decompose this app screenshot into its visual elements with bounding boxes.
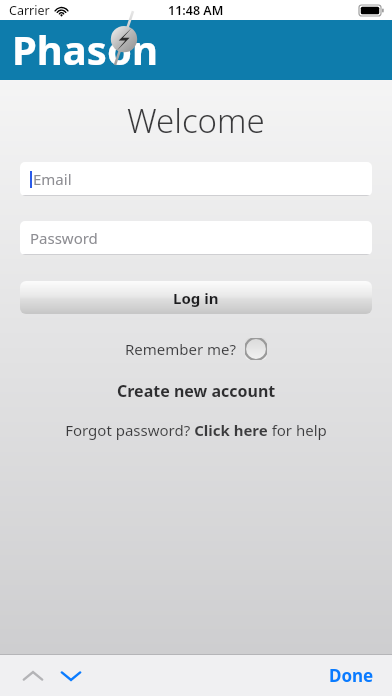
button[interactable]: Remember me? — [125, 338, 267, 360]
staticText: Carrier — [9, 2, 50, 19]
button[interactable]: Previous field — [16, 659, 50, 693]
button[interactable]: Done — [325, 660, 378, 691]
staticText: Phason — [12, 22, 158, 76]
button[interactable]: Email — [20, 162, 372, 196]
staticText: Password — [30, 228, 98, 248]
staticText: Forgot password? Click here for help — [65, 420, 327, 440]
staticText: 11:48 AM — [168, 2, 224, 19]
staticText: Create new account — [117, 380, 276, 402]
button[interactable]: Next field — [54, 659, 88, 693]
staticText: Email — [33, 169, 72, 189]
staticText: Done — [329, 664, 374, 687]
button[interactable]: Log in — [20, 281, 372, 314]
button[interactable]: Forgot password? Click here for help — [65, 420, 327, 440]
staticText: Log in — [173, 288, 219, 308]
button[interactable]: Create new account — [117, 380, 276, 402]
staticText: Welcome — [127, 98, 265, 143]
button[interactable]: Password — [20, 221, 372, 255]
staticText: Remember me? — [125, 339, 237, 359]
